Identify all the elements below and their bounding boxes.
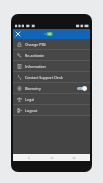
button[interactable]: Back [22,154,36,161]
staticText: Logout [25,108,38,113]
button[interactable]: Re-activate [13,50,90,61]
button[interactable]: Logout [13,105,90,116]
button[interactable]: Contact Support Desk [13,72,90,83]
staticText: Change PIN [25,42,46,47]
button[interactable]: Home [45,154,59,161]
staticText: Legal [25,97,35,102]
staticText: Re-activate [25,53,45,58]
staticText: Information [25,64,46,69]
button[interactable]: Legal [13,94,90,105]
staticText: Contact Support Desk [25,75,63,80]
button[interactable]: Biometry toggle [77,86,87,91]
button[interactable]: Change PIN [13,39,90,50]
staticText: Biometry [25,86,41,91]
button[interactable]: Recent apps [67,154,81,161]
button[interactable]: Biometry [13,83,90,94]
button[interactable]: Information [13,61,90,72]
button[interactable]: Close [13,29,23,39]
